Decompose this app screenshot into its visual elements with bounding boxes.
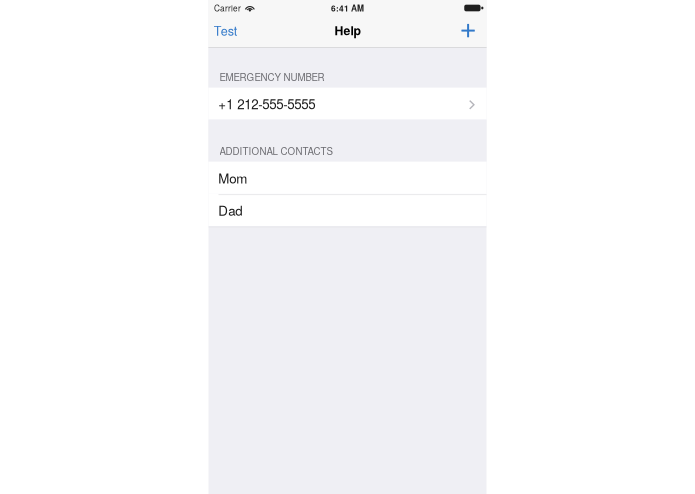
staticText: Test xyxy=(214,21,238,39)
button[interactable]: Dad xyxy=(208,194,486,226)
staticText: EMERGENCY NUMBER xyxy=(219,70,324,84)
staticText: Help xyxy=(334,21,360,39)
button[interactable]: Add contact xyxy=(453,16,486,48)
staticText: 6:41 AM xyxy=(331,2,364,14)
button[interactable]: +1 212-555-5555 xyxy=(208,88,486,120)
staticText: +1 212-555-5555 xyxy=(218,94,315,113)
button[interactable]: Test xyxy=(208,16,246,48)
staticText: Dad xyxy=(218,200,242,220)
staticText: Mom xyxy=(218,168,247,187)
staticText: Carrier xyxy=(214,2,241,14)
staticText: ADDITIONAL CONTACTS xyxy=(219,144,332,158)
button[interactable]: Mom xyxy=(208,162,486,194)
